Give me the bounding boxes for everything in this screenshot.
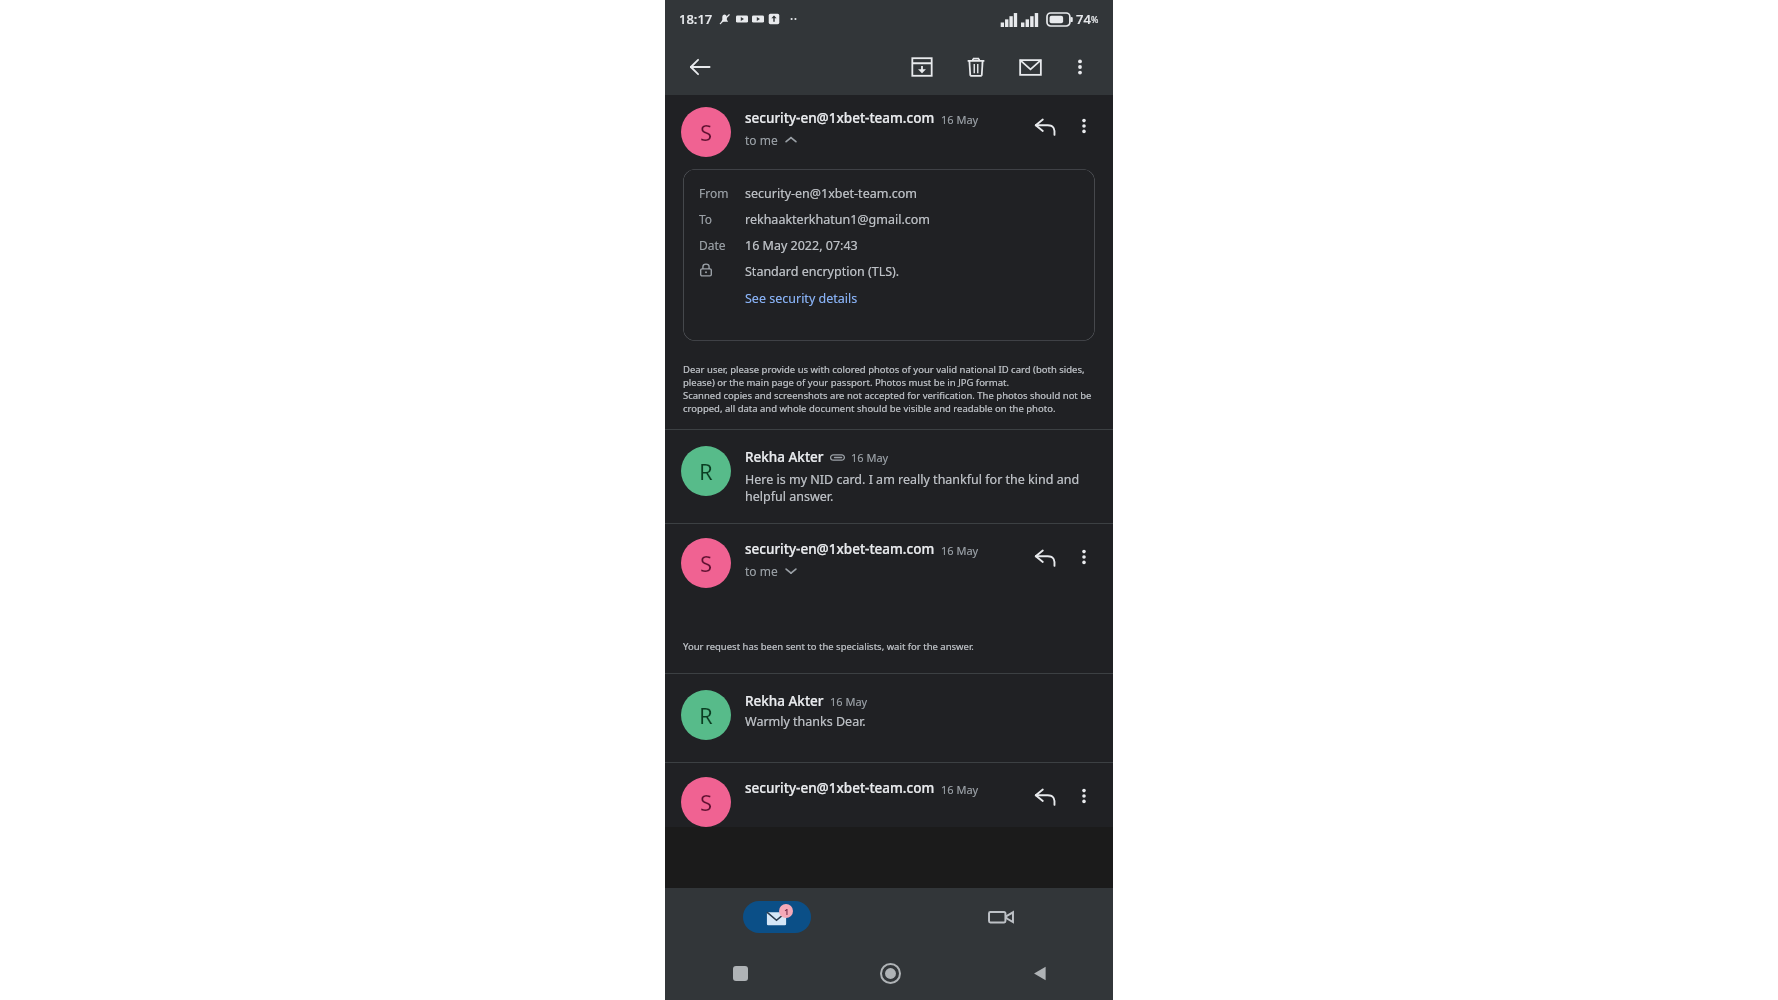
button[interactable]: More options	[1065, 538, 1103, 576]
button[interactable]: More options	[1061, 48, 1099, 86]
button[interactable]: Meet	[967, 901, 1035, 933]
staticText: to me	[745, 132, 778, 148]
staticText: 16 May 2022, 07:43	[745, 237, 858, 254]
button[interactable]: Reply	[1025, 107, 1065, 147]
button[interactable]: More options	[1065, 777, 1103, 815]
staticText: 18:17	[679, 10, 713, 28]
staticText: 16 May	[851, 450, 889, 465]
staticText: 16 May	[941, 782, 979, 797]
staticText: S	[700, 548, 713, 578]
button[interactable]: Back	[679, 46, 721, 88]
button[interactable]: S	[681, 538, 731, 588]
staticText: Here is my NID card. I am really thankfu…	[745, 471, 1095, 505]
button[interactable]: Reply	[1025, 777, 1065, 817]
button[interactable]: Mark unread	[1009, 46, 1051, 88]
staticText: 74	[1076, 10, 1091, 28]
staticText: 1	[784, 906, 789, 917]
staticText: R	[699, 700, 713, 730]
button[interactable]: S	[665, 524, 1113, 594]
button[interactable]: Delete	[955, 46, 997, 88]
staticText: Dear user, please provide us with colore…	[683, 363, 1095, 415]
button[interactable]: Recents	[718, 951, 762, 995]
button[interactable]: Reply	[1025, 538, 1065, 578]
staticText: To	[699, 211, 713, 227]
button[interactable]: S	[681, 777, 731, 827]
staticText: security-en@1xbet-team.com	[745, 185, 917, 202]
staticText: Standard encryption (TLS).	[745, 263, 900, 280]
button[interactable]: S	[681, 107, 731, 157]
staticText: security-en@1xbet-team.com	[745, 109, 935, 127]
button[interactable]: S	[665, 95, 1113, 163]
button[interactable]: Mail	[743, 901, 811, 933]
button[interactable]: More options	[1065, 107, 1103, 145]
staticText: to me	[745, 563, 778, 579]
staticText: security-en@1xbet-team.com	[745, 779, 935, 797]
button[interactable]: Home	[868, 951, 912, 995]
staticText: Rekha Akter	[745, 692, 824, 710]
button[interactable]: Back	[1017, 951, 1061, 995]
button[interactable]: R	[665, 430, 1113, 523]
staticText: R	[699, 456, 713, 486]
staticText: Your request has been sent to the specia…	[683, 640, 974, 653]
staticText: S	[700, 787, 713, 817]
button[interactable]: See security details	[745, 290, 858, 307]
staticText: rekhaakterkhatun1@gmail.com	[745, 211, 930, 228]
button[interactable]: From	[683, 169, 1095, 341]
staticText: Date	[699, 237, 726, 253]
button[interactable]: R	[681, 446, 731, 496]
staticText: Warmly thanks Dear.	[745, 713, 866, 730]
staticText: 16 May	[941, 112, 979, 127]
staticText: security-en@1xbet-team.com	[745, 540, 935, 558]
staticText: From	[699, 185, 729, 201]
button[interactable]: R	[681, 690, 731, 740]
button[interactable]: S	[665, 763, 1113, 827]
staticText: S	[700, 117, 713, 147]
staticText: 16 May	[941, 543, 979, 558]
staticText: %	[1091, 13, 1099, 25]
staticText: 16 May	[830, 694, 868, 709]
staticText: Rekha Akter	[745, 448, 824, 466]
button[interactable]: Archive	[901, 46, 943, 88]
button[interactable]: R	[665, 674, 1113, 762]
